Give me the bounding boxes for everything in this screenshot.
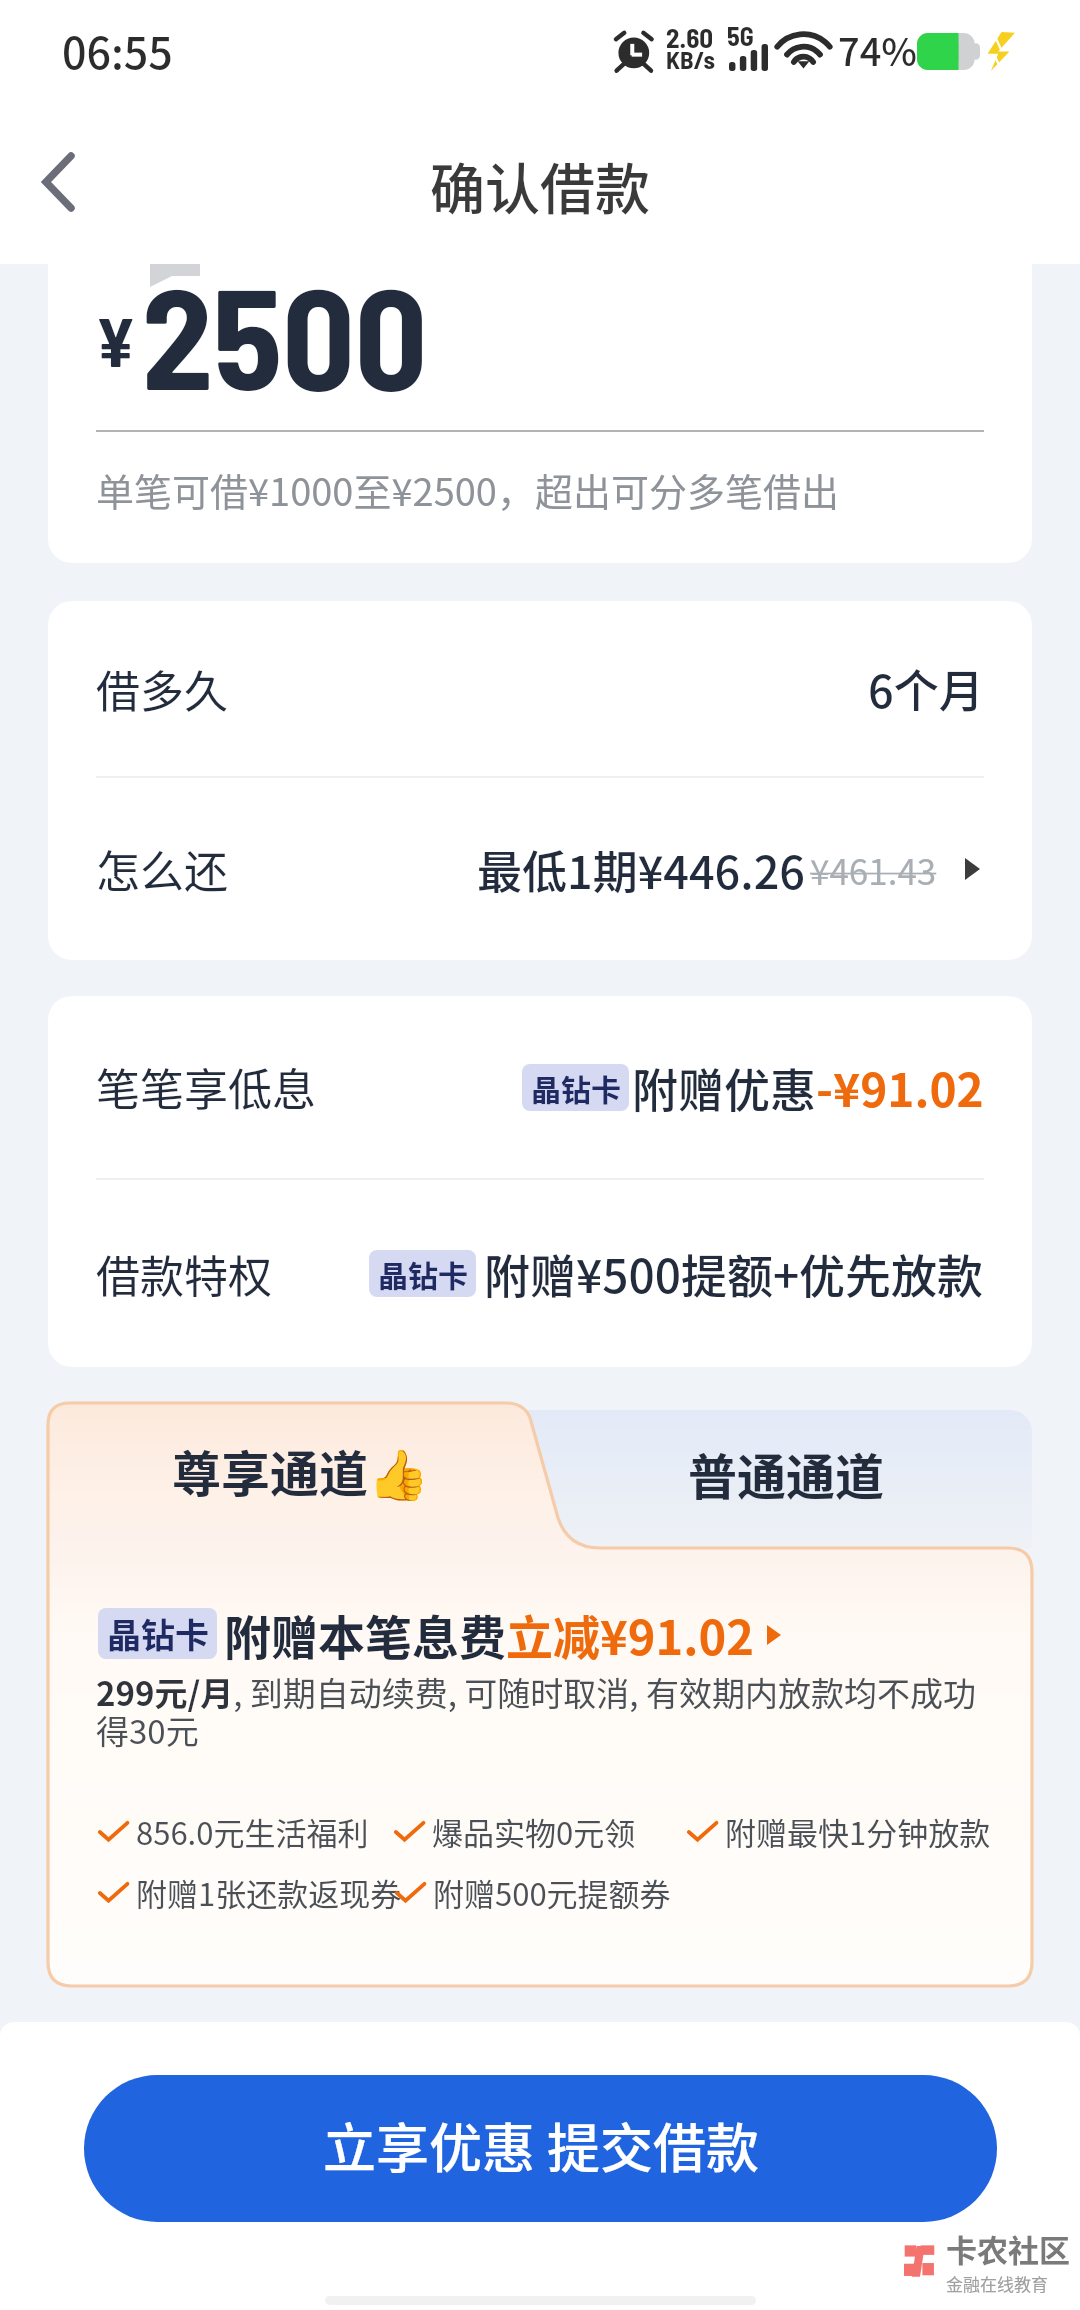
button[interactable]: 怎么还 [48, 778, 1032, 960]
button[interactable]: 立享优惠 提交借款 [84, 2075, 997, 2222]
staticText: 2500 [142, 264, 428, 418]
staticText: 附赠最快1分钟放款 [725, 1809, 991, 1854]
staticText: 晶钻卡 [107, 1609, 209, 1658]
staticText: 附赠本笔息费立减¥91.02 [224, 1600, 754, 1668]
staticText: 附赠¥500提额+优先放款 [484, 1240, 984, 1307]
staticText: 06:55 [62, 19, 173, 81]
button[interactable]: 笔笔享低息 [48, 996, 1032, 1178]
staticText: 确认借款 [430, 145, 651, 225]
button[interactable]: Back [0, 124, 116, 240]
staticText: 普通通道 [688, 1438, 885, 1509]
button[interactable]: 借多久 [48, 601, 1032, 776]
staticText: 单笔可借¥1000至¥2500，超出可分多笔借出 [96, 462, 839, 517]
staticText: 晶钻卡 [378, 1252, 468, 1295]
staticText: ¥461.43 [810, 844, 937, 895]
staticText: 6个月 [868, 656, 984, 721]
staticText: 2.60 [666, 21, 714, 53]
staticText: 卡农社区 [946, 2226, 1070, 2271]
staticText: 74% [838, 22, 918, 77]
staticText: 299元/月, 到期自动续费, 可随时取消, 有效期内放款均不成功 得30元 [96, 1668, 976, 1754]
staticText: 笔笔享低息 [96, 1055, 316, 1119]
button[interactable]: 借款特权 [48, 1180, 1032, 1367]
button[interactable] [468, 1410, 1032, 1548]
staticText: 尊享通道👍 [172, 1435, 430, 1506]
staticText: KB/s [666, 44, 716, 74]
staticText: 借款特权 [96, 1242, 272, 1306]
staticText: 附赠优惠 [632, 1054, 816, 1121]
staticText: 附赠1张还款返现券 [136, 1870, 402, 1915]
staticText: ¥ [95, 299, 137, 381]
staticText: 5G [727, 20, 754, 51]
staticText: 借多久 [96, 657, 228, 721]
staticText: 856.0元生活福利 [136, 1809, 369, 1854]
staticText: 金融在线教育 [946, 2271, 1048, 2296]
staticText: 最低1期¥446.26 [477, 837, 805, 902]
staticText: 爆品实物0元领 [432, 1809, 636, 1854]
staticText: 立享优惠 提交借款 [323, 2107, 759, 2184]
staticText: 附赠500元提额券 [433, 1870, 671, 1915]
button[interactable] [48, 1403, 526, 1548]
staticText: 晶钻卡 [531, 1066, 621, 1109]
staticText: -¥91.02 [816, 1054, 984, 1121]
staticText: 怎么还 [96, 837, 228, 901]
